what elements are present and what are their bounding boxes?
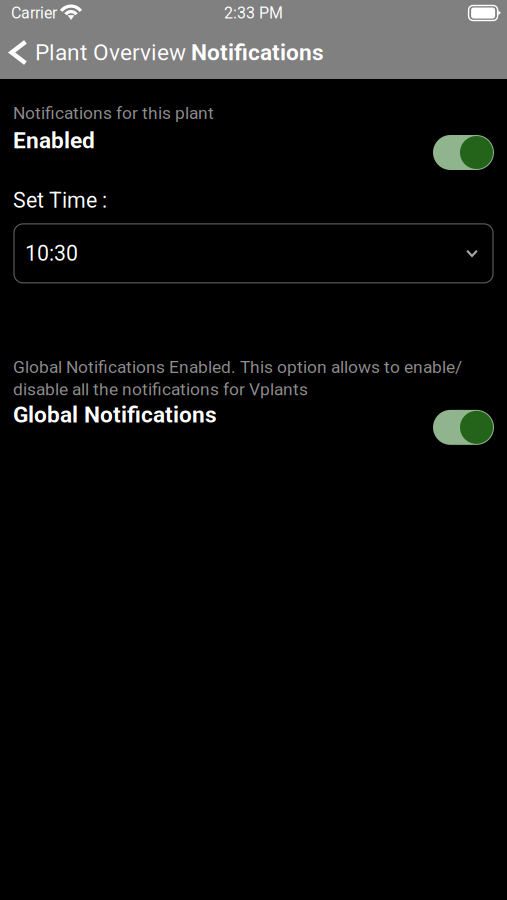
staticText: Global Notifications Enabled. This optio… [13, 357, 462, 377]
staticText: Carrier [11, 4, 57, 22]
staticText: Notifications [191, 39, 324, 66]
staticText: Set Time : [13, 188, 107, 213]
staticText: disable all the notifications for Vplant… [13, 379, 308, 399]
staticText: Global Notifications [13, 401, 217, 428]
staticText: Enabled [13, 127, 95, 154]
button[interactable]: Notifications for this plant [433, 135, 494, 170]
button[interactable]: Plant Overview [9, 34, 186, 71]
staticText: 2:33 PM [224, 4, 283, 22]
staticText: 10:30 [25, 241, 78, 266]
button[interactable]: 10:30 [14, 224, 493, 283]
button[interactable]: Global Notifications [433, 410, 494, 445]
staticText: Plant Overview [35, 39, 186, 66]
staticText: Notifications for this plant [13, 103, 214, 123]
